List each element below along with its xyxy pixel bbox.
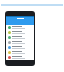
button[interactable]	[6, 45, 34, 50]
button[interactable]	[6, 35, 34, 40]
button[interactable]	[6, 55, 34, 60]
button[interactable]	[6, 17, 34, 25]
button[interactable]	[6, 30, 34, 35]
button[interactable]	[6, 40, 34, 45]
button[interactable]	[6, 50, 34, 55]
button[interactable]	[6, 25, 34, 30]
